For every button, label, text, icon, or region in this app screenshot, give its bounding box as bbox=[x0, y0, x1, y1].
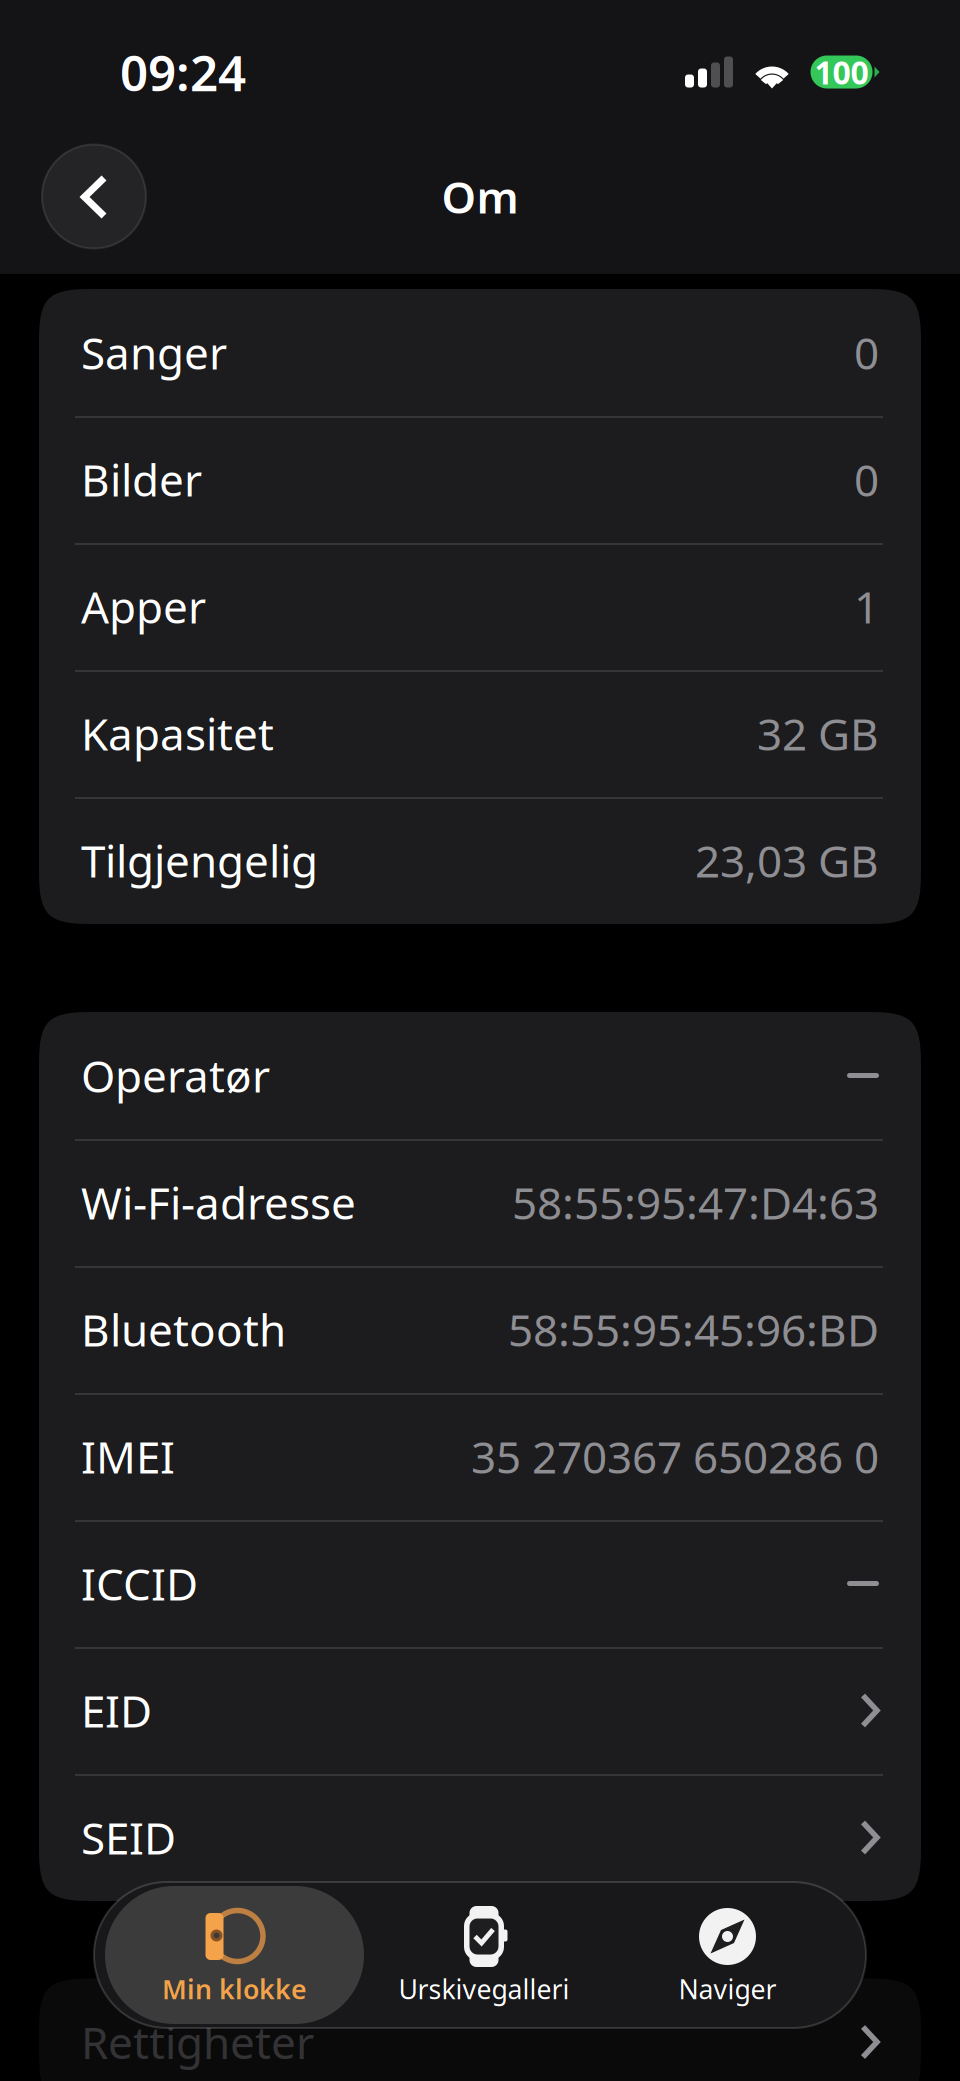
button[interactable]: SEID bbox=[39, 1774, 921, 1901]
staticText: 09:24 bbox=[120, 39, 246, 105]
button[interactable]: Wi-Fi-adresse bbox=[39, 1139, 921, 1266]
staticText: Wi-Fi-adresse bbox=[81, 1173, 356, 1232]
button[interactable]: Bluetooth bbox=[39, 1266, 921, 1393]
staticText: 58:55:95:47:D4:63 bbox=[512, 1173, 879, 1232]
staticText: ICCID bbox=[81, 1554, 198, 1613]
button[interactable]: EID bbox=[39, 1647, 921, 1774]
staticText: Apper bbox=[81, 577, 206, 636]
staticText: 35 270367 650286 0 bbox=[471, 1427, 879, 1486]
staticText: Operatør bbox=[81, 1046, 270, 1105]
button[interactable]: Tilgjengelig bbox=[39, 797, 921, 924]
staticText: EID bbox=[81, 1681, 152, 1740]
staticText: 58:55:95:45:96:BD bbox=[508, 1300, 879, 1359]
staticText: 0 bbox=[854, 450, 879, 509]
button[interactable]: Tilbake bbox=[42, 144, 146, 248]
button[interactable]: Rettigheter bbox=[39, 1978, 921, 2081]
button[interactable]: Operatør bbox=[39, 1012, 921, 1139]
staticText: 1 bbox=[854, 577, 879, 636]
staticText: Tilgjengelig bbox=[81, 831, 318, 890]
button[interactable]: ICCID bbox=[39, 1520, 921, 1647]
staticText: IMEI bbox=[81, 1427, 175, 1486]
staticText: SEID bbox=[81, 1808, 176, 1867]
staticText: Kapasitet bbox=[81, 704, 274, 763]
staticText: Naviger bbox=[678, 1971, 776, 2007]
staticText: Om bbox=[441, 167, 518, 226]
button[interactable]: Naviger bbox=[604, 1886, 851, 2024]
staticText: Bilder bbox=[81, 450, 202, 509]
button[interactable]: Min klokke bbox=[105, 1886, 364, 2024]
staticText: 32 GB bbox=[757, 704, 879, 763]
staticText: 23,03 GB bbox=[695, 831, 879, 890]
button[interactable]: Sanger bbox=[39, 289, 921, 416]
button[interactable]: IMEI bbox=[39, 1393, 921, 1520]
staticText: Bluetooth bbox=[81, 1300, 286, 1359]
staticText: 100 bbox=[814, 51, 868, 93]
staticText: Urskivegalleri bbox=[398, 1971, 569, 2007]
button[interactable]: Urskivegalleri bbox=[364, 1886, 604, 2024]
staticText: Sanger bbox=[81, 323, 227, 382]
button[interactable]: Bilder bbox=[39, 416, 921, 543]
staticText: Rettigheter bbox=[81, 2013, 314, 2071]
staticText: 0 bbox=[854, 323, 879, 382]
staticText: Min klokke bbox=[162, 1971, 307, 2007]
button[interactable]: Apper bbox=[39, 543, 921, 670]
button[interactable]: Kapasitet bbox=[39, 670, 921, 797]
